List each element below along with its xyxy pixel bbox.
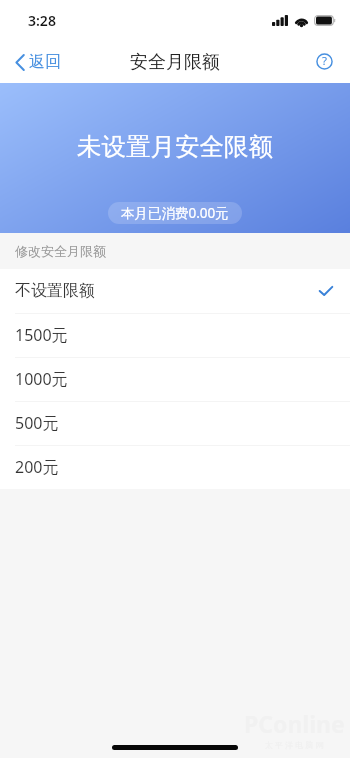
staticText: 返回 <box>29 52 61 72</box>
button[interactable]: 500元 <box>0 401 350 445</box>
button[interactable]: 本月已消费0.00元 <box>108 202 242 224</box>
staticText: ? <box>322 53 327 69</box>
staticText: 本月已消费0.00元 <box>121 204 229 222</box>
staticText: 不设置限额 <box>15 281 95 301</box>
staticText: 1500元 <box>15 324 68 346</box>
staticText: 安全月限额 <box>130 51 220 74</box>
button[interactable]: 1000元 <box>0 357 350 401</box>
staticText: 500元 <box>15 412 59 434</box>
staticText: 修改安全月限额 <box>15 243 106 259</box>
staticText: 未设置月安全限额 <box>77 131 273 162</box>
button[interactable]: 1500元 <box>0 313 350 357</box>
staticText: 3:28 <box>28 11 56 30</box>
staticText: 200元 <box>15 456 59 478</box>
button[interactable]: 200元 <box>0 445 350 489</box>
button[interactable]: 返回 <box>0 41 73 83</box>
button[interactable]: Help <box>309 47 339 77</box>
button[interactable]: 不设置限额 <box>0 269 350 313</box>
staticText: 1000元 <box>15 368 68 390</box>
